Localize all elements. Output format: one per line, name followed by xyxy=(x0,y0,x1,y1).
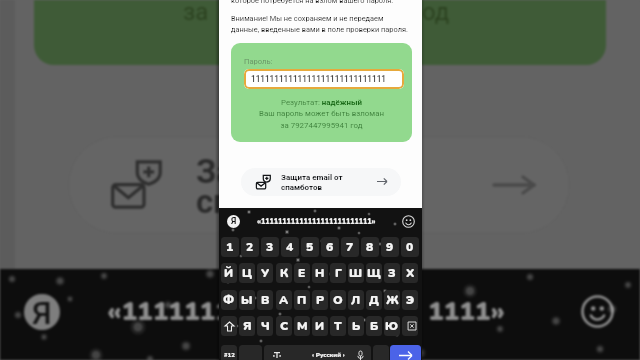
button[interactable]: Н xyxy=(312,263,328,283)
staticText: 8 xyxy=(366,239,374,255)
staticText: 2 xyxy=(246,239,254,255)
button[interactable]: У xyxy=(257,263,273,283)
button[interactable]: Щ xyxy=(366,263,382,283)
button[interactable]: Г xyxy=(330,263,346,283)
staticText: 0 xyxy=(406,239,414,255)
button[interactable]: П xyxy=(294,290,310,310)
staticText: М xyxy=(297,318,308,334)
button[interactable]: Ь xyxy=(348,316,364,336)
staticText: Ц xyxy=(242,265,253,281)
staticText: Т xyxy=(334,318,342,334)
staticText: «1111111 xyxy=(107,294,231,329)
button[interactable]: Р xyxy=(312,290,328,310)
button[interactable]: Е xyxy=(294,263,310,283)
button[interactable]: Ы xyxy=(239,290,255,310)
staticText: 4 xyxy=(286,239,294,255)
button[interactable]: Х xyxy=(402,263,418,283)
staticText: Э xyxy=(406,292,415,308)
button[interactable]: 4 xyxy=(281,237,299,257)
staticText: Д xyxy=(369,292,379,308)
button[interactable]: К xyxy=(276,263,292,283)
button[interactable]: И xyxy=(312,316,328,336)
staticText: З xyxy=(388,265,396,281)
staticText: «11111111111111111111111111» xyxy=(257,217,376,227)
staticText: Ш xyxy=(349,265,363,281)
staticText: П xyxy=(297,292,307,308)
staticText: Щ xyxy=(367,265,381,281)
button[interactable]: 5 xyxy=(301,237,319,257)
staticText: Р xyxy=(316,292,325,308)
staticText: Я xyxy=(32,294,52,330)
staticText: Ь xyxy=(352,318,361,334)
staticText: 1 xyxy=(226,239,234,255)
button[interactable]: З xyxy=(384,263,400,283)
staticText: Н xyxy=(315,265,325,281)
button[interactable]: Ю xyxy=(384,316,400,336)
button[interactable]: Backspace xyxy=(402,316,418,336)
staticText: сп xyxy=(196,182,232,221)
staticText: данные, введенные вами в поле проверки п… xyxy=(231,25,408,34)
staticText: 5 xyxy=(306,239,314,255)
button[interactable]: Enter xyxy=(390,345,421,360)
staticText: Ю xyxy=(385,318,399,334)
button[interactable]: Й xyxy=(221,263,237,283)
button[interactable]: 0 xyxy=(401,237,419,257)
button[interactable]: Ш xyxy=(348,263,364,283)
button[interactable]: Ф xyxy=(221,290,237,310)
staticText: Г xyxy=(335,265,342,281)
staticText: К xyxy=(280,265,289,281)
staticText: од xyxy=(422,0,450,26)
button[interactable]: В xyxy=(257,290,273,310)
staticText: за xyxy=(183,0,209,26)
staticText: В xyxy=(261,292,270,308)
button[interactable]: 7 xyxy=(341,237,359,257)
button[interactable]: Yandex Keyboard menu xyxy=(227,215,240,228)
button[interactable]: А xyxy=(276,290,292,310)
button[interactable]: Space xyxy=(264,345,371,360)
button[interactable]: Я xyxy=(239,316,255,336)
staticText: Х xyxy=(406,265,415,281)
button[interactable]: М xyxy=(294,316,310,336)
button[interactable]: Shift xyxy=(221,316,237,336)
staticText: Результат: надёжный xyxy=(231,98,412,107)
staticText: Ч xyxy=(261,318,270,334)
button[interactable]: Ц xyxy=(239,263,255,283)
staticText: которое потребуется на взлом вашего паро… xyxy=(231,0,394,5)
button[interactable]: 8 xyxy=(361,237,379,257)
staticText: 3 xyxy=(266,239,274,255)
staticText: ‹ Русский › xyxy=(312,351,345,359)
staticText: 11111111111111111111111111111 xyxy=(251,74,386,84)
button[interactable]: Л xyxy=(348,290,364,310)
button[interactable]: О xyxy=(330,290,346,310)
staticText: #12 xyxy=(224,351,235,359)
button[interactable]: 3 xyxy=(261,237,279,257)
button[interactable]: 1 xyxy=(221,237,239,257)
staticText: За xyxy=(196,152,235,191)
button[interactable]: Защита email от xyxy=(241,168,401,196)
button[interactable]: Э xyxy=(402,290,418,310)
staticText: Б xyxy=(370,318,379,334)
staticText: Внимание! Мы не сохраняем и не передаем xyxy=(231,14,384,23)
staticText: спамботов xyxy=(281,183,323,192)
button[interactable]: 9 xyxy=(381,237,399,257)
button[interactable]: Ж xyxy=(384,290,400,310)
button[interactable]: Т xyxy=(330,316,346,336)
button[interactable]: #12 xyxy=(221,345,237,360)
button[interactable]: С xyxy=(276,316,292,336)
button[interactable]: 2 xyxy=(241,237,259,257)
button[interactable]: 11111111111111111111111111111 xyxy=(244,69,404,89)
staticText: 6 xyxy=(326,239,334,255)
button[interactable]: Д xyxy=(366,290,382,310)
staticText: Ы xyxy=(241,292,253,308)
button[interactable]: 6 xyxy=(321,237,339,257)
staticText: У xyxy=(261,265,270,281)
button[interactable]: Ч xyxy=(257,316,273,336)
staticText: Й xyxy=(224,265,234,281)
staticText: Ф xyxy=(223,292,235,308)
staticText: Е xyxy=(298,265,306,281)
button[interactable]: Emoji xyxy=(402,215,415,228)
staticText: 9 xyxy=(386,239,394,255)
button[interactable]: Б xyxy=(366,316,382,336)
